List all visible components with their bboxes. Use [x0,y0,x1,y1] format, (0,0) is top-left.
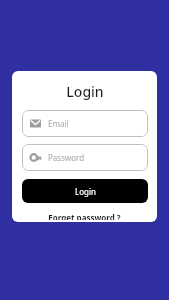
button[interactable]: Forget password ? [44,210,125,222]
staticText: Password [48,152,85,163]
staticText: Login [75,186,96,197]
staticText: Forget password ? [48,212,121,220]
staticText: Email [48,118,69,129]
button[interactable]: Login [22,179,148,203]
staticText: Login [66,82,104,101]
button[interactable]: Email [22,110,148,137]
button[interactable]: Password [22,144,148,171]
